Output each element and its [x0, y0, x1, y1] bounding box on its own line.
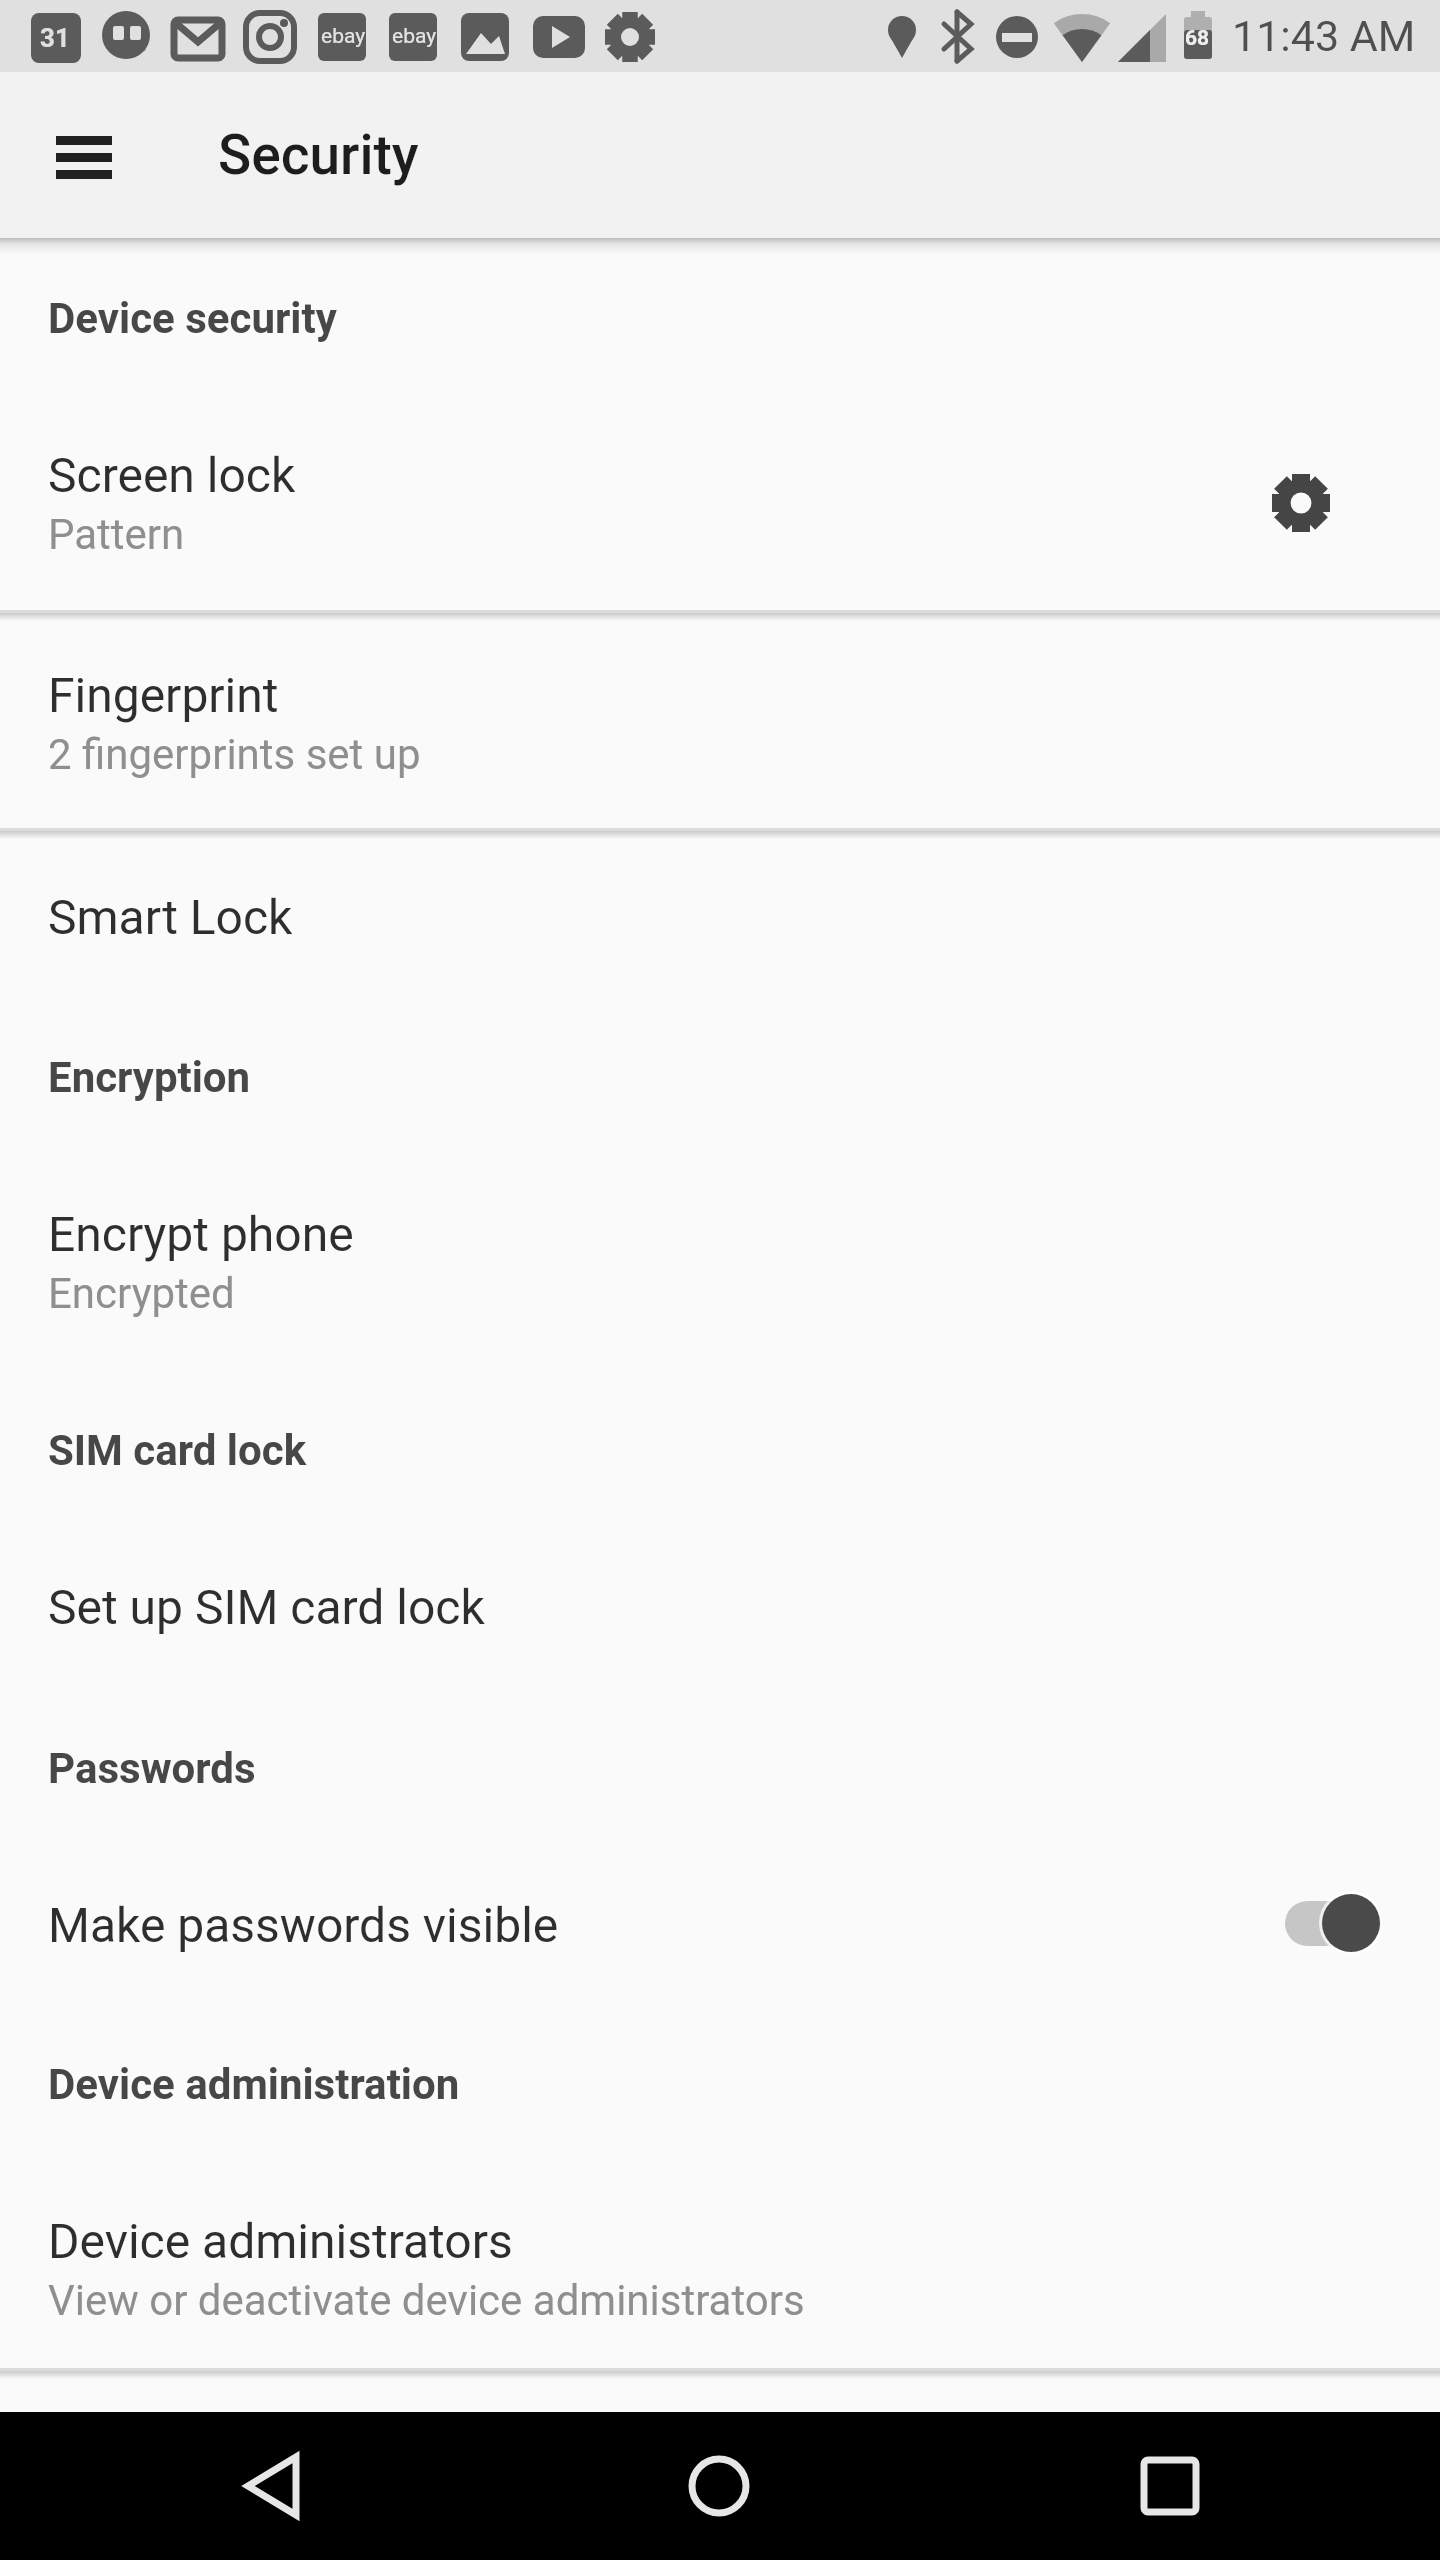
staticText: Encrypt phone — [48, 1206, 354, 1262]
button[interactable] — [210, 2426, 330, 2546]
button[interactable]: Screen lock — [0, 396, 1440, 610]
staticText: Device administration — [48, 2060, 460, 2109]
staticText: 11:43 AM — [1232, 11, 1416, 61]
staticText: Set up SIM card lock — [48, 1579, 485, 1635]
button[interactable] — [659, 2426, 779, 2546]
staticText: Make passwords visible — [48, 1897, 559, 1953]
button[interactable] — [1245, 447, 1357, 559]
button[interactable]: Smart Lock — [0, 838, 1440, 996]
staticText: Encryption — [48, 1053, 251, 1102]
button[interactable] — [1280, 1886, 1390, 1962]
staticText: ebay — [392, 24, 437, 49]
staticText: 31 — [40, 23, 70, 53]
staticText: 2 fingerprints set up — [48, 730, 421, 779]
staticText: Fingerprint — [48, 667, 279, 723]
staticText: Smart Lock — [48, 889, 293, 945]
button[interactable]: Fingerprint — [0, 616, 1440, 830]
staticText: SIM card lock — [48, 1426, 307, 1475]
staticText: Pattern — [48, 510, 185, 559]
button[interactable]: Encrypt phone — [0, 1147, 1440, 1377]
staticText: Encrypted — [48, 1269, 235, 1318]
button[interactable]: Make passwords visible — [0, 1830, 1440, 2020]
button[interactable] — [1110, 2426, 1230, 2546]
staticText: View or deactivate device administrators — [48, 2276, 805, 2325]
staticText: ebay — [321, 24, 366, 49]
staticText: Device security — [48, 294, 337, 343]
staticText: Device administrators — [48, 2213, 513, 2269]
button[interactable]: Device administrators — [0, 2170, 1440, 2368]
staticText: Security — [218, 123, 419, 187]
button[interactable]: Set up SIM card lock — [0, 1517, 1440, 1697]
staticText: Screen lock — [48, 447, 296, 503]
staticText: Passwords — [48, 1744, 256, 1793]
staticText: 68 — [1185, 26, 1210, 51]
button[interactable] — [28, 100, 138, 210]
